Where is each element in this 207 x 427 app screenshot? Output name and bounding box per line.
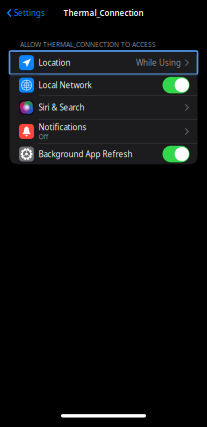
staticText: Local Network <box>38 80 91 90</box>
staticText: Settings <box>14 8 45 18</box>
button[interactable]: Settings <box>0 0 51 26</box>
staticText: Thermal_Connection <box>63 8 143 18</box>
button[interactable]: Local Network <box>9 75 197 95</box>
staticText: Siri & Search <box>38 102 84 113</box>
staticText: Background App Refresh <box>38 149 132 159</box>
button[interactable]: Notifications <box>9 120 197 143</box>
staticText: While Using <box>136 57 181 68</box>
staticText: Location <box>38 57 70 68</box>
button[interactable]: Location <box>9 51 197 74</box>
staticText: Notifications <box>38 122 86 132</box>
button[interactable]: Background App Refresh <box>9 144 197 164</box>
staticText: Off <box>38 132 48 141</box>
staticText: ALLOW THERMAL_CONNECTION TO ACCESS <box>20 40 156 49</box>
button[interactable]: Siri & Search <box>9 96 197 119</box>
